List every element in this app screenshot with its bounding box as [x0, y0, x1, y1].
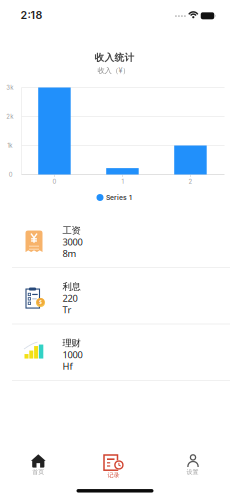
staticText: 1 — [121, 178, 123, 185]
staticText: 收入（¥） — [97, 66, 129, 75]
button[interactable]: 理财 — [0, 324, 230, 380]
button[interactable]: 首页 — [18, 448, 58, 480]
staticText: 利息 — [62, 281, 80, 292]
staticText: 设置 — [186, 468, 198, 476]
staticText: 3000 — [62, 235, 82, 248]
staticText: 收入统计 — [94, 51, 134, 64]
staticText: 2 — [188, 178, 192, 185]
staticText: 工资 — [62, 224, 80, 236]
button[interactable]: 设置 — [171, 448, 211, 480]
staticText: 8m — [62, 247, 76, 260]
staticText: 2k — [6, 113, 13, 120]
staticText: 理财 — [62, 337, 80, 349]
staticText: 0 — [52, 178, 56, 185]
staticText: 2:18 — [20, 8, 42, 21]
staticText: Tr — [62, 303, 71, 316]
button[interactable]: 工资 — [0, 211, 230, 267]
staticText: 220 — [62, 292, 77, 304]
staticText: 首页 — [32, 468, 44, 476]
staticText: 1k — [7, 142, 12, 149]
staticText: 0 — [9, 171, 13, 178]
staticText: 3k — [6, 84, 13, 91]
staticText: 记录 — [107, 471, 119, 479]
staticText: Hf — [62, 360, 72, 372]
button[interactable]: $ — [0, 268, 230, 324]
button[interactable]: 记录 — [92, 448, 136, 484]
staticText: Series 1 — [106, 193, 132, 202]
staticText: 1000 — [62, 348, 82, 361]
staticText: $ — [39, 298, 42, 305]
